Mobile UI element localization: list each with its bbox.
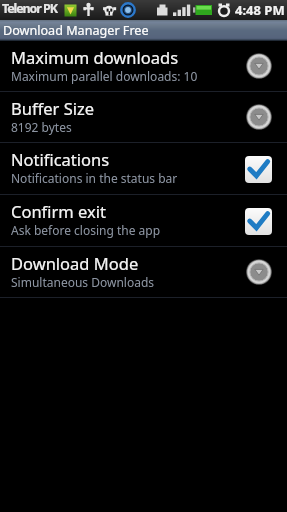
other: Open <box>246 259 272 285</box>
staticText: 8192 bytes <box>11 119 72 135</box>
staticText: Download Manager Free <box>3 22 149 39</box>
other: Toggle <box>244 207 272 235</box>
button[interactable]: Confirm exit <box>0 195 287 247</box>
staticText: 4:48 PM <box>235 1 285 19</box>
staticText: Telenor PK <box>2 0 57 17</box>
button[interactable]: Notifications <box>0 143 287 195</box>
button[interactable]: Download Mode <box>0 247 287 298</box>
button[interactable]: Maximum downloads <box>0 41 287 92</box>
staticText: Confirm exit <box>11 200 106 222</box>
staticText: Ask before closing the app <box>11 222 161 238</box>
staticText: Download Mode <box>11 252 139 274</box>
staticText: Simultaneous Downloads <box>11 274 155 290</box>
staticText: Buffer Size <box>11 97 95 119</box>
staticText: Notifications <box>11 148 110 170</box>
button[interactable]: Buffer Size <box>0 92 287 143</box>
other: Toggle <box>244 155 272 183</box>
staticText: Maximum downloads <box>11 46 179 68</box>
other: Open <box>246 53 272 79</box>
other: Open <box>246 104 272 130</box>
staticText: Notifications in the status bar <box>11 170 178 186</box>
staticText: Maximum parallel downloads: 10 <box>11 68 198 84</box>
